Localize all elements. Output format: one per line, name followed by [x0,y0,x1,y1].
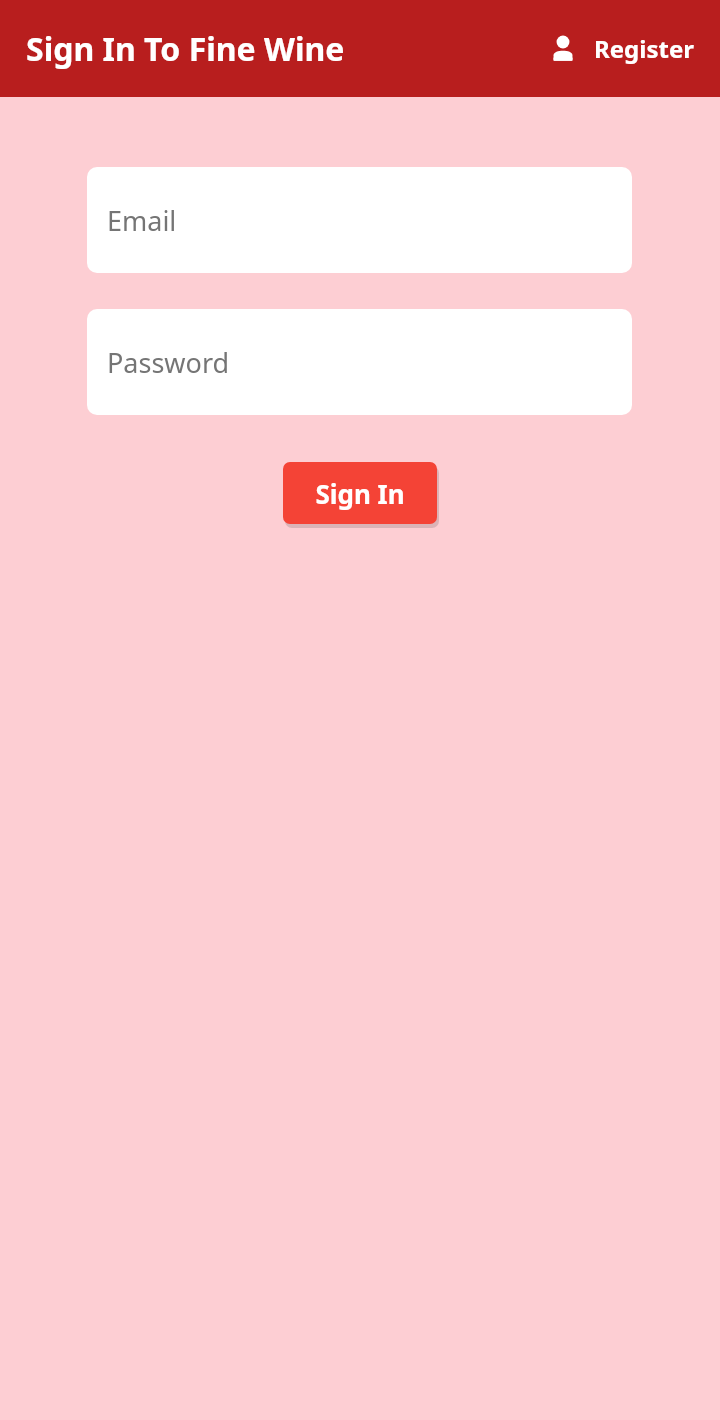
button[interactable]: Sign In [283,462,437,524]
staticText: Sign In [315,476,405,511]
staticText: Sign In To Fine Wine [26,27,345,71]
button[interactable]: Email [87,167,632,273]
button[interactable]: Password [87,309,632,415]
button[interactable]: Register [542,26,700,71]
staticText: Password [107,344,230,381]
staticText: Email [107,202,177,239]
staticText: Register [594,32,694,65]
other: Account [548,34,578,64]
